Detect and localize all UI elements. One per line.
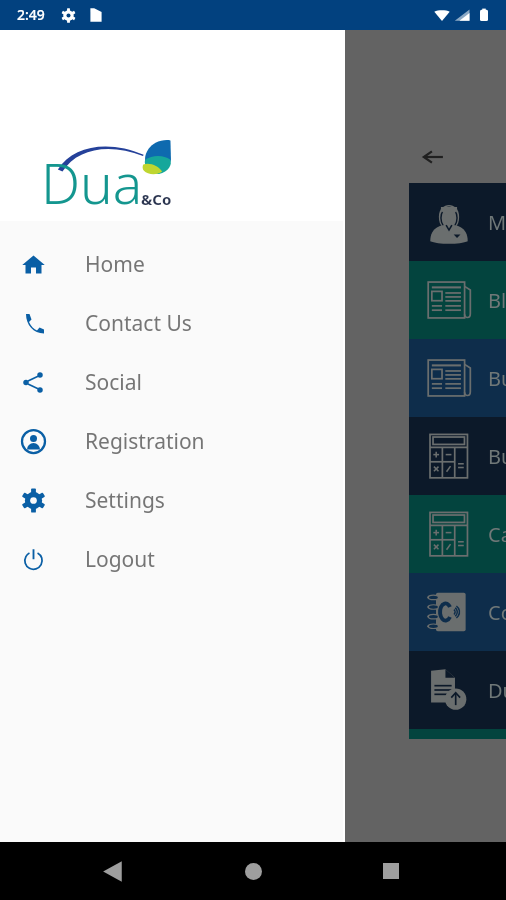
staticText: Dua Upload xyxy=(488,677,506,704)
staticText: Contact Us xyxy=(85,309,192,338)
button[interactable]: Social xyxy=(0,353,345,412)
staticText: Business News xyxy=(488,365,506,392)
button[interactable]: My Profile xyxy=(409,183,506,261)
staticText: Dua xyxy=(41,145,143,220)
button[interactable]: Business Calculator xyxy=(409,417,506,495)
staticText: My Profile xyxy=(488,209,506,236)
button[interactable]: Contact Us xyxy=(0,294,345,353)
button[interactable]: Settings xyxy=(0,471,345,530)
staticText: Blog xyxy=(488,287,506,314)
staticText: Contact Us xyxy=(488,599,506,626)
button[interactable]: Blog xyxy=(409,261,506,339)
button[interactable]: Home xyxy=(230,848,276,894)
staticText: Logout xyxy=(85,545,155,574)
button[interactable]: Calculator xyxy=(409,495,506,573)
staticText: Calculator xyxy=(488,521,506,548)
button[interactable]: Registration xyxy=(0,412,345,471)
staticText: Business Calculator xyxy=(488,443,506,470)
button[interactable]: Logout xyxy=(0,530,345,589)
button[interactable]: Business News xyxy=(409,339,506,417)
button[interactable]: Recent apps xyxy=(368,848,414,894)
staticText: 2:49 xyxy=(17,5,45,24)
button[interactable]: Contact Us xyxy=(409,573,506,651)
button[interactable]: Home xyxy=(0,235,345,294)
button[interactable]: Dua Upload xyxy=(409,651,506,729)
staticText: Social xyxy=(85,368,142,397)
staticText: Registration xyxy=(85,427,205,456)
button[interactable]: Back xyxy=(90,848,136,894)
staticText: Settings xyxy=(85,486,165,515)
staticText: &Co xyxy=(141,189,172,209)
staticText: Home xyxy=(85,250,145,279)
button[interactable]: Back xyxy=(414,138,452,176)
